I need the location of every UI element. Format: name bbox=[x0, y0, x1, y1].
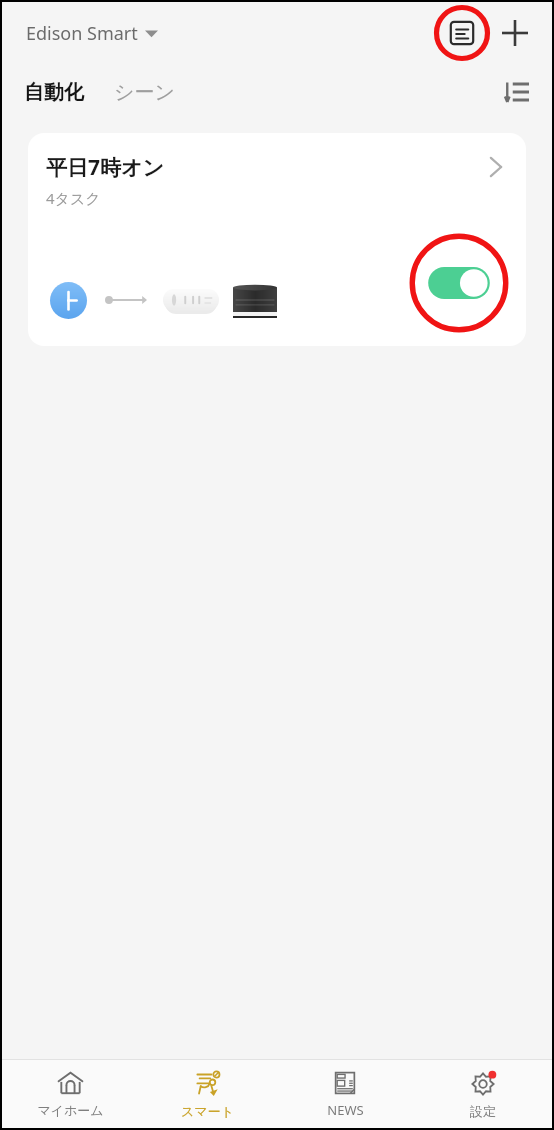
button[interactable]: Enable automation bbox=[404, 228, 514, 338]
staticText: 4タスク bbox=[46, 188, 101, 208]
staticText: 平日7時オン bbox=[46, 153, 164, 182]
button[interactable]: マイホーム bbox=[2, 1060, 139, 1128]
button[interactable]: Automation log bbox=[434, 5, 490, 61]
button[interactable]: Edison Smart bbox=[22, 15, 162, 52]
staticText: スマート bbox=[181, 1103, 234, 1119]
button[interactable]: 自動化 bbox=[16, 74, 92, 111]
staticText: シーン bbox=[114, 80, 175, 105]
button[interactable]: Sort bbox=[492, 68, 540, 116]
staticText: 設定 bbox=[470, 1103, 496, 1119]
button[interactable]: スマート bbox=[139, 1060, 276, 1128]
button[interactable]: Open automation bbox=[474, 145, 518, 189]
button[interactable]: Add automation bbox=[492, 10, 538, 56]
button[interactable]: NEWS bbox=[276, 1060, 414, 1128]
staticText: マイホーム bbox=[37, 1102, 104, 1118]
button[interactable]: 設定 bbox=[414, 1060, 552, 1128]
button[interactable]: シーン bbox=[106, 74, 183, 111]
staticText: NEWS bbox=[327, 1101, 364, 1119]
staticText: Edison Smart bbox=[26, 21, 138, 46]
button[interactable]: 平日7時オン bbox=[28, 133, 526, 346]
staticText: 自動化 bbox=[24, 80, 84, 105]
